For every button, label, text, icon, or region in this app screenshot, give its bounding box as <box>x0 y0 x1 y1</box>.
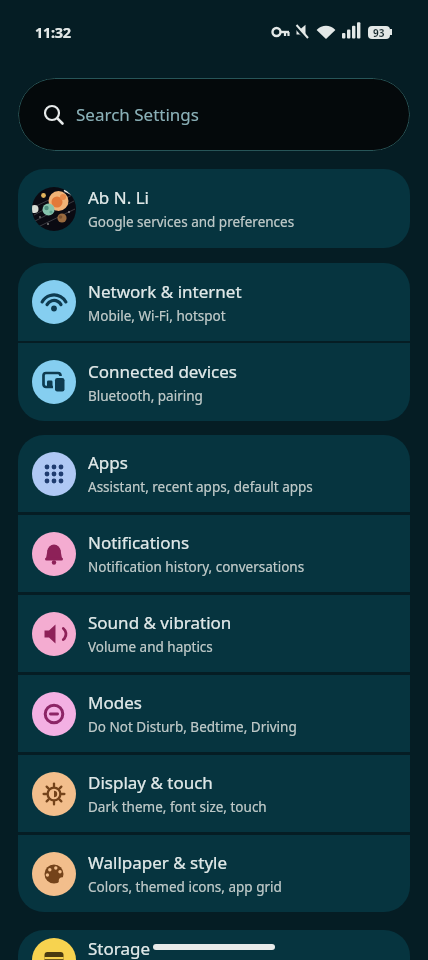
staticText: Google services and preferences <box>88 213 295 231</box>
button[interactable]: Connected devices <box>18 343 410 421</box>
staticText: Wallpaper & style <box>88 851 228 874</box>
staticText: 11:32 <box>35 22 71 42</box>
button[interactable]: Network & internet <box>18 263 410 341</box>
staticText: Notifications <box>88 531 190 554</box>
button[interactable]: Modes <box>18 675 410 752</box>
staticText: Connected devices <box>88 360 238 383</box>
button[interactable]: Apps <box>18 435 410 512</box>
staticText: Sound & vibration <box>88 611 232 634</box>
staticText: Colors, themed icons, app grid <box>88 878 282 896</box>
staticText: Notification history, conversations <box>88 558 305 576</box>
button[interactable]: Search Settings <box>18 78 410 151</box>
button[interactable]: Ab N. Li <box>18 169 410 248</box>
staticText: 93 <box>373 26 385 39</box>
button[interactable] <box>32 187 76 231</box>
staticText: Storage <box>88 937 151 960</box>
staticText: Ab N. Li <box>88 186 149 209</box>
button[interactable]: Sound & vibration <box>18 595 410 672</box>
staticText: Display & touch <box>88 771 213 794</box>
staticText: Network & internet <box>88 280 242 303</box>
staticText: Search Settings <box>76 103 199 126</box>
staticText: Volume and haptics <box>88 638 213 656</box>
staticText: Assistant, recent apps, default apps <box>88 478 313 496</box>
button[interactable]: Notifications <box>18 515 410 592</box>
staticText: Mobile, Wi-Fi, hotspot <box>88 307 226 325</box>
staticText: Modes <box>88 691 142 714</box>
staticText: Bluetooth, pairing <box>88 387 203 405</box>
staticText: Apps <box>88 451 128 474</box>
button[interactable]: Storage <box>18 930 410 960</box>
staticText: Do Not Disturb, Bedtime, Driving <box>88 718 297 736</box>
staticText: Dark theme, font size, touch <box>88 798 267 816</box>
button[interactable]: Wallpaper & style <box>18 835 410 912</box>
button[interactable]: Display & touch <box>18 755 410 832</box>
